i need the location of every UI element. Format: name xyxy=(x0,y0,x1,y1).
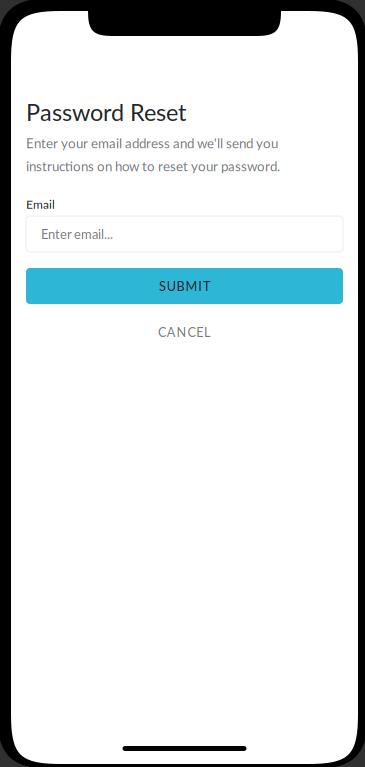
button[interactable]: CANCEL xyxy=(26,319,343,345)
staticText: SUBMIT xyxy=(159,278,210,294)
staticText: CANCEL xyxy=(158,324,211,340)
button[interactable]: SUBMIT xyxy=(26,268,343,304)
staticText: Email xyxy=(26,197,55,211)
staticText: Enter your email address and we'll send … xyxy=(26,135,280,174)
staticText: Password Reset xyxy=(26,98,186,126)
staticText: Enter email... xyxy=(41,226,113,242)
